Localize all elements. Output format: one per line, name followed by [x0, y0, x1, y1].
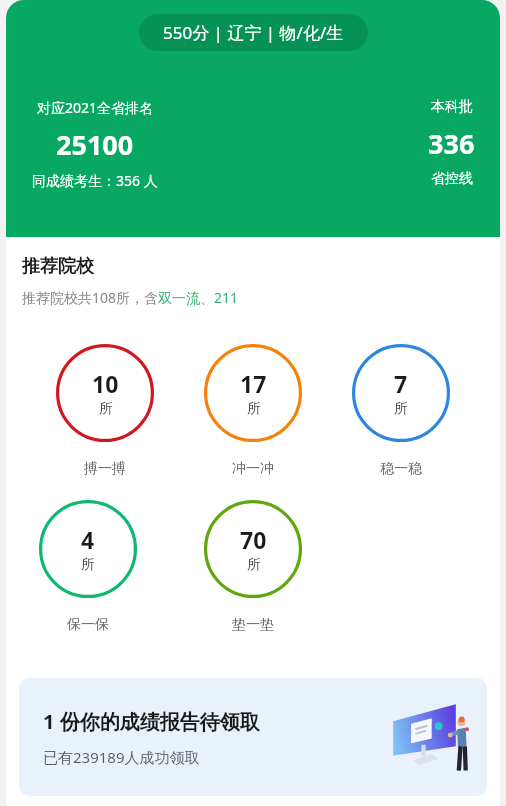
button[interactable]: 10 — [56, 344, 154, 478]
staticText: 4 — [81, 524, 95, 555]
staticText: 所 — [99, 400, 113, 418]
staticText: 稳一稳 — [380, 460, 422, 478]
button[interactable]: 4 — [39, 500, 137, 634]
staticText: 本科批 — [431, 98, 473, 116]
button[interactable]: 7 — [352, 344, 450, 478]
staticText: 7 — [394, 368, 408, 399]
button[interactable]: 17 — [204, 344, 302, 478]
staticText: 所 — [81, 556, 95, 574]
staticText: 25100 — [56, 126, 134, 163]
staticText: 省控线 — [431, 170, 473, 188]
button[interactable]: 70 — [204, 500, 302, 634]
button[interactable]: 1 份你的成绩报告待领取 — [19, 678, 487, 796]
staticText: 336 — [428, 125, 475, 162]
staticText: 10 — [92, 368, 119, 399]
staticText: 对应2021全省排名 — [37, 98, 154, 117]
staticText: 已有239189人成功领取 — [43, 747, 200, 767]
staticText: 保一保 — [67, 616, 109, 634]
staticText: 同成绩考生：356 人 — [32, 171, 158, 190]
button[interactable]: 550分 | 辽宁 | 物/化/生 — [139, 14, 368, 51]
staticText: 冲一冲 — [232, 460, 274, 478]
staticText: 推荐院校 — [22, 255, 94, 278]
staticText: 17 — [240, 368, 267, 399]
staticText: 所 — [394, 400, 408, 418]
staticText: 70 — [240, 524, 267, 555]
other: 成绩报告插图 — [387, 698, 473, 776]
button[interactable]: 推荐院校共108所，含双一流、211 — [22, 288, 239, 307]
staticText: 所 — [247, 556, 261, 574]
staticText: 垫一垫 — [232, 616, 274, 634]
staticText: 1 份你的成绩报告待领取 — [43, 708, 260, 735]
staticText: 所 — [247, 400, 261, 418]
staticText: 搏一搏 — [84, 460, 126, 478]
staticText: 550分 | 辽宁 | 物/化/生 — [163, 21, 344, 44]
